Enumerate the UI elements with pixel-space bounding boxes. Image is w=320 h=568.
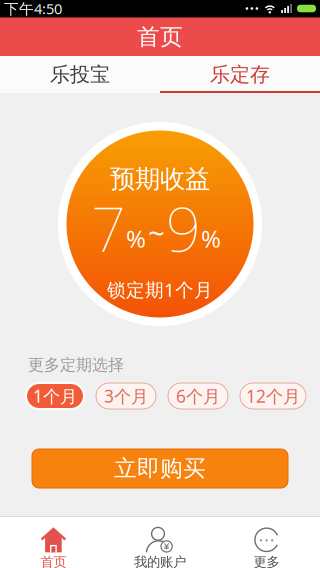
staticText: 首页: [40, 554, 66, 568]
staticText: 7: [91, 187, 126, 269]
staticText: %: [201, 223, 221, 254]
staticText: 下午4:50: [4, 0, 62, 18]
button[interactable]: 立即购买: [32, 449, 288, 488]
staticText: ~: [148, 212, 165, 251]
staticText: 9: [166, 187, 201, 269]
staticText: 更多定期选择: [28, 355, 124, 375]
staticText: 12个月: [246, 384, 300, 407]
staticText: 我的账户: [134, 554, 186, 568]
staticText: 预期收益: [110, 163, 210, 194]
button[interactable]: 更多: [213, 517, 320, 568]
button[interactable]: 12个月: [240, 383, 306, 409]
staticText: 立即购买: [114, 455, 206, 482]
button[interactable]: 乐投宝: [0, 56, 160, 93]
button[interactable]: 我的账户: [107, 517, 213, 568]
button[interactable]: 3个月: [96, 383, 156, 409]
staticText: 锁定期1个月: [107, 277, 213, 302]
staticText: 6个月: [176, 384, 220, 407]
staticText: 首页: [137, 23, 183, 51]
staticText: %: [126, 223, 146, 254]
staticText: 更多: [254, 554, 280, 568]
staticText: 乐投宝: [50, 62, 110, 87]
button[interactable]: 乐定存: [160, 56, 320, 93]
button[interactable]: 1个月: [26, 383, 84, 409]
staticText: 1个月: [33, 384, 77, 407]
button[interactable]: 6个月: [168, 383, 228, 409]
staticText: 3个月: [104, 384, 148, 407]
button[interactable]: 首页: [0, 517, 107, 568]
staticText: 乐定存: [210, 62, 270, 87]
